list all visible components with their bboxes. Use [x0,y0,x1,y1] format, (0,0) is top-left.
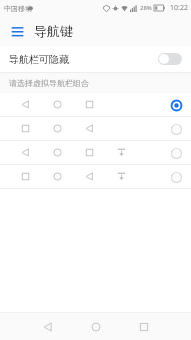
button[interactable]: Navigation layout option [0,165,191,188]
staticText: 导航键 [34,23,73,39]
button[interactable]: Navigation layout option [0,141,191,164]
staticText: 中国移动 [4,4,32,13]
button[interactable]: 导航栏可隐藏 [0,46,191,72]
button[interactable]: Recents [120,313,168,340]
button[interactable]: Menu [6,20,28,42]
button[interactable]: Home [72,313,120,340]
staticText: 导航栏可隐藏 [9,53,158,66]
staticText: 10:22 [170,3,188,13]
button[interactable]: Navigation layout option [0,117,191,140]
staticText: 28% [140,4,152,12]
button[interactable]: Back [24,313,72,340]
staticText: 请选择虚拟导航栏组合 [9,78,89,88]
button[interactable]: Navigation layout option [0,93,191,116]
